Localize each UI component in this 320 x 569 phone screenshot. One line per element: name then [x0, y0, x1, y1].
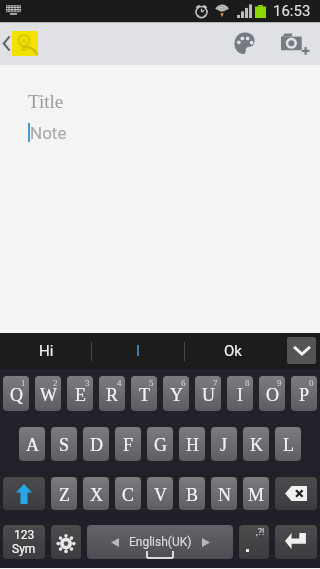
- button[interactable]: P: [291, 376, 317, 411]
- staticText: V: [154, 485, 167, 505]
- button[interactable]: W: [35, 376, 61, 411]
- staticText: G: [154, 435, 167, 455]
- button[interactable]: Symbols: [3, 525, 45, 559]
- button[interactable]: L: [275, 427, 301, 461]
- button[interactable]: Hi: [0, 333, 92, 369]
- staticText: 8: [245, 378, 250, 388]
- button[interactable]: Settings: [51, 525, 81, 559]
- button[interactable]: M: [243, 477, 269, 510]
- button[interactable]: Period: [239, 525, 269, 559]
- staticText: L: [283, 435, 294, 455]
- staticText: M: [248, 485, 265, 505]
- staticText: R: [106, 385, 119, 405]
- button[interactable]: Enter: [275, 525, 317, 559]
- button[interactable]: Ok: [185, 333, 280, 369]
- staticText: U: [202, 385, 215, 405]
- staticText: 7: [213, 378, 218, 388]
- staticText: A: [26, 435, 39, 455]
- button[interactable]: Shift: [3, 477, 45, 510]
- staticText: E: [75, 385, 86, 405]
- staticText: D: [90, 435, 103, 455]
- staticText: W: [40, 385, 57, 405]
- button[interactable]: R: [99, 376, 125, 411]
- staticText: Note: [30, 123, 67, 143]
- button[interactable]: O: [259, 376, 285, 411]
- button[interactable]: V: [147, 477, 173, 510]
- button[interactable]: Q: [3, 376, 29, 411]
- staticText: X: [90, 485, 103, 505]
- staticText: P: [299, 385, 310, 405]
- button[interactable]: U: [195, 376, 221, 411]
- button[interactable]: Y: [163, 376, 189, 411]
- button[interactable]: I: [227, 376, 253, 411]
- button[interactable]: B: [179, 477, 205, 510]
- staticText: 16:53: [273, 2, 311, 20]
- button[interactable]: F: [115, 427, 141, 461]
- button[interactable]: G: [147, 427, 173, 461]
- staticText: 2: [53, 378, 58, 388]
- staticText: J: [220, 435, 228, 455]
- staticText: O: [266, 385, 279, 405]
- button[interactable]: Space: [87, 525, 233, 559]
- staticText: 0: [309, 378, 314, 388]
- staticText: English(UK): [129, 535, 192, 549]
- button[interactable]: Colour: [223, 22, 267, 65]
- staticText: 1: [21, 378, 26, 388]
- staticText: B: [186, 485, 199, 505]
- button[interactable]: E: [67, 376, 93, 411]
- staticText: 4: [117, 378, 122, 388]
- staticText: K: [250, 435, 263, 455]
- staticText: N: [218, 485, 231, 505]
- staticText: T: [139, 385, 150, 405]
- button[interactable]: Z: [51, 477, 77, 510]
- button[interactable]: Navigate up: [0, 22, 44, 65]
- button[interactable]: K: [243, 427, 269, 461]
- staticText: ,?!: [256, 527, 265, 538]
- button[interactable]: H: [179, 427, 205, 461]
- staticText: H: [186, 435, 199, 455]
- staticText: Hi: [39, 342, 54, 360]
- staticText: 5: [149, 378, 154, 388]
- staticText: C: [122, 485, 135, 505]
- staticText: Q: [10, 385, 23, 405]
- button[interactable]: I: [92, 333, 185, 369]
- staticText: 6: [181, 378, 186, 388]
- button[interactable]: J: [211, 427, 237, 461]
- staticText: 3: [85, 378, 90, 388]
- staticText: Ok: [224, 342, 242, 360]
- button[interactable]: C: [115, 477, 141, 510]
- staticText: I: [237, 385, 243, 405]
- button[interactable]: S: [51, 427, 77, 461]
- staticText: F: [123, 435, 134, 455]
- button[interactable]: X: [83, 477, 109, 510]
- staticText: Y: [170, 385, 183, 405]
- button[interactable]: Add image: [272, 22, 320, 65]
- staticText: S: [59, 435, 70, 455]
- button[interactable]: N: [211, 477, 237, 510]
- button[interactable]: T: [131, 376, 157, 411]
- button[interactable]: Expand suggestions: [287, 337, 316, 364]
- staticText: 123: [14, 528, 35, 542]
- button[interactable]: D: [83, 427, 109, 461]
- staticText: Title: [28, 91, 64, 112]
- button[interactable]: Backspace: [275, 477, 317, 510]
- staticText: Z: [59, 485, 70, 505]
- staticText: I: [136, 342, 141, 360]
- button[interactable]: A: [19, 427, 45, 461]
- staticText: Sym: [12, 542, 36, 556]
- staticText: 9: [277, 378, 282, 388]
